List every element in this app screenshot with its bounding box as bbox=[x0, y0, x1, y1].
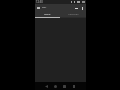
button[interactable]: Search bbox=[74, 6, 78, 10]
button[interactable]: Back bbox=[42, 82, 51, 90]
button[interactable]: Home bbox=[51, 82, 60, 90]
button[interactable]: Navigation menu bbox=[36, 6, 40, 10]
staticText: NETWORK bbox=[68, 13, 79, 16]
staticText: 12:30 bbox=[36, 0, 43, 4]
button[interactable]: Recent apps bbox=[60, 82, 69, 90]
button[interactable]: More options bbox=[80, 6, 84, 10]
button[interactable]: LOCAL bbox=[35, 11, 60, 17]
staticText: LOCAL bbox=[44, 13, 51, 16]
button[interactable]: Menu bbox=[69, 82, 78, 90]
staticText: Files bbox=[42, 6, 47, 9]
button[interactable]: NETWORK bbox=[60, 11, 86, 17]
